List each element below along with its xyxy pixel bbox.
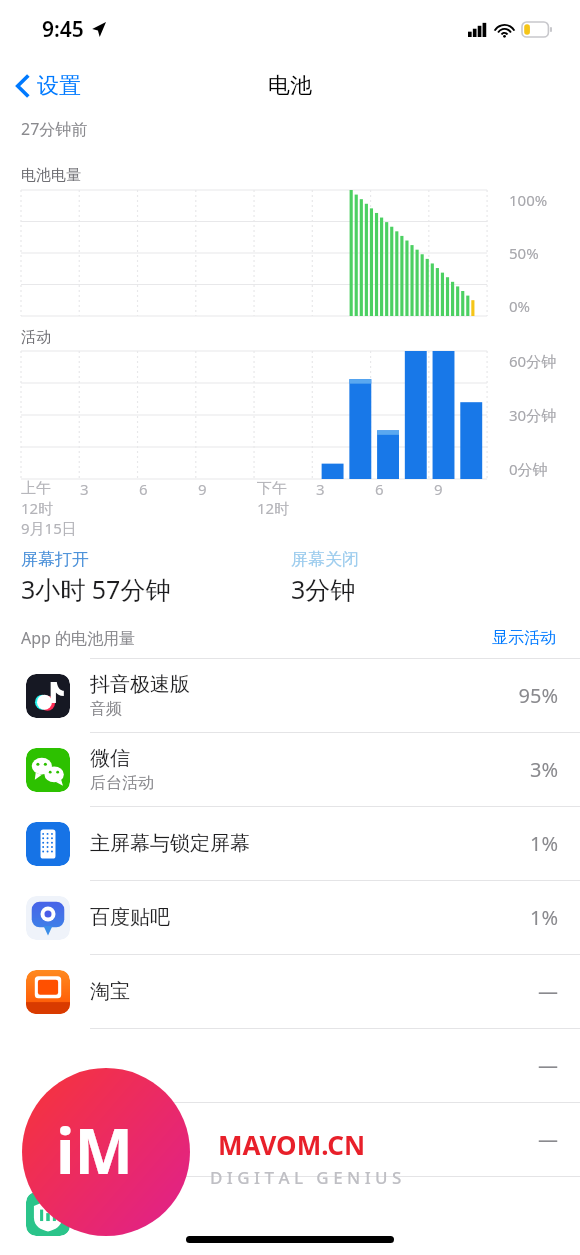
staticText: 抖音极速版	[90, 672, 190, 697]
staticText: 音频	[90, 699, 122, 719]
staticText: 微信	[90, 746, 130, 771]
staticText: 显示活动	[492, 628, 556, 648]
button[interactable]: 百度贴吧	[0, 881, 580, 954]
staticText: —	[538, 1126, 558, 1153]
staticText: 27分钟前	[21, 118, 88, 140]
staticText: 1%	[529, 830, 558, 857]
staticText: 6	[139, 479, 148, 499]
button[interactable]: 淘宝	[0, 955, 580, 1028]
staticText: 9	[198, 479, 207, 499]
staticText: 12时	[21, 498, 54, 518]
button[interactable]: —	[0, 1029, 580, 1102]
staticText: 6	[375, 479, 384, 499]
staticText: 60分钟	[509, 351, 557, 371]
staticText: 屏幕关闭	[291, 549, 359, 570]
staticText: 活动	[21, 328, 51, 347]
staticText: —	[538, 978, 558, 1005]
staticText: 3	[80, 479, 89, 499]
staticText: MAVOM.CN	[218, 1127, 366, 1162]
staticText: 屏幕打开	[21, 549, 89, 570]
staticText: 后台活动	[90, 773, 154, 793]
staticText: 9月15日	[21, 518, 77, 538]
staticText: 3	[316, 479, 325, 499]
staticText: 9	[434, 479, 443, 499]
button[interactable]: 设置	[0, 66, 93, 106]
button[interactable]: 微信	[0, 733, 580, 806]
button[interactable]: 米家	[0, 1177, 580, 1250]
staticText: 米家	[90, 1201, 130, 1226]
staticText: —	[538, 1052, 558, 1079]
staticText: 12时	[257, 498, 290, 518]
staticText: iM	[56, 1108, 134, 1192]
staticText: 1%	[529, 904, 558, 931]
staticText: 100%	[509, 190, 548, 210]
staticText: 3小时 57分钟	[21, 572, 171, 606]
staticText: 百度贴吧	[90, 905, 170, 930]
button[interactable]: 显示活动	[488, 624, 560, 652]
button[interactable]: —	[0, 1103, 580, 1176]
button[interactable]: 主屏幕与锁定屏幕	[0, 807, 580, 880]
staticText: 0分钟	[509, 459, 548, 479]
button[interactable]: 抖音极速版	[0, 659, 580, 732]
staticText: 电池电量	[21, 166, 81, 185]
staticText: 3分钟	[291, 572, 356, 606]
staticText: 30分钟	[509, 405, 557, 425]
staticText: 上午	[21, 479, 51, 498]
staticText: 3%	[529, 756, 558, 783]
staticText: 下午	[257, 479, 287, 498]
staticText: 0%	[509, 296, 531, 316]
staticText: 设置	[37, 72, 81, 100]
staticText: 淘宝	[90, 979, 130, 1004]
staticText: App 的电池用量	[21, 627, 136, 649]
staticText: D I G I T A L G E N I U S	[210, 1166, 402, 1189]
staticText: 9:45	[42, 15, 84, 44]
staticText: 95%	[518, 682, 558, 709]
staticText: 主屏幕与锁定屏幕	[90, 831, 250, 856]
staticText: 电池	[268, 72, 312, 100]
staticText: 50%	[509, 243, 539, 263]
